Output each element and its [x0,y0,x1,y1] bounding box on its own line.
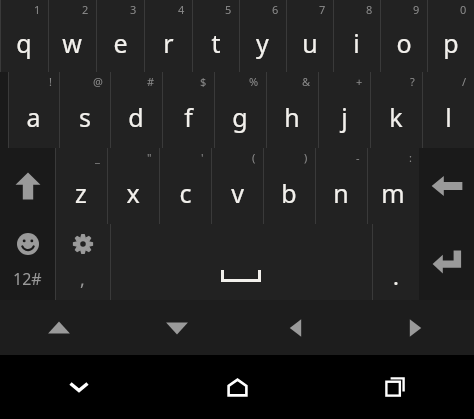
button[interactable]: 2 [48,0,96,72]
staticText: c [179,176,192,210]
staticText: h [284,100,300,134]
button[interactable]: Move left [236,300,355,355]
staticText: 12# [13,268,42,290]
button[interactable]: Move right [355,300,474,355]
button[interactable]: . [372,224,419,300]
button[interactable]: 6 [239,0,286,72]
staticText: r [163,26,174,60]
button[interactable]: ! [8,72,59,148]
button[interactable]: " [107,148,159,224]
button[interactable]: Space [110,224,372,300]
button[interactable]: Backspace [419,148,474,224]
staticText: - [356,150,360,165]
staticText: " [147,150,152,165]
button[interactable]: ? [370,72,422,148]
staticText: e [113,26,128,60]
button[interactable]: ( [211,148,263,224]
button[interactable]: 9 [380,0,427,72]
button[interactable]: # [110,72,162,148]
button[interactable]: Move down [118,300,236,355]
staticText: q [16,26,32,60]
button[interactable]: Home [158,355,316,419]
staticText: @ [93,74,103,89]
button[interactable]: % [214,72,266,148]
button[interactable]: & [266,72,318,148]
button[interactable]: 8 [333,0,380,72]
button[interactable]: : [367,148,419,224]
staticText: 3 [130,2,137,17]
button[interactable]: Recent apps [316,355,474,419]
button[interactable]: / [422,72,474,148]
staticText: 5 [225,2,232,17]
staticText: f [184,100,193,134]
staticText: t [211,26,221,60]
staticText: i [353,26,360,60]
staticText: z [75,176,87,210]
staticText: $ [200,74,207,89]
button[interactable]: - [315,148,367,224]
staticText: # [147,74,155,89]
staticText: & [302,74,311,89]
staticText: 4 [178,2,185,17]
staticText: l [445,100,452,134]
staticText: w [62,26,82,60]
staticText: 0 [460,2,467,17]
staticText: : [409,150,412,165]
button[interactable]: 5 [192,0,239,72]
staticText: 1 [34,2,41,17]
staticText: x [126,176,140,210]
staticText: 6 [272,2,279,17]
staticText: g [232,100,248,134]
staticText: a [26,100,41,134]
button[interactable]: 3 [96,0,144,72]
button[interactable]: 0 [427,0,474,72]
staticText: y [256,26,269,60]
button[interactable]: _ [55,148,107,224]
staticText: b [281,176,297,210]
button[interactable]: Enter [419,224,474,300]
button[interactable]: 4 [144,0,192,72]
button[interactable]: Symbols and emoji [0,224,55,300]
staticText: ) [304,150,308,165]
staticText: ' [201,150,204,165]
button[interactable]: 1 [0,0,48,72]
button[interactable]: Move up [0,300,118,355]
staticText: . [393,261,399,291]
staticText: + [356,74,363,89]
staticText: 7 [319,2,326,17]
staticText: ( [252,150,256,165]
staticText: ? [410,74,415,89]
staticText: d [128,100,144,134]
button[interactable]: ' [159,148,211,224]
staticText: j [341,100,348,134]
button[interactable]: Settings [55,224,110,300]
staticText: v [231,176,244,210]
staticText: , [80,267,85,292]
staticText: % [249,74,259,89]
button[interactable]: Shift [0,148,55,224]
button[interactable]: + [318,72,370,148]
staticText: _ [95,150,100,165]
staticText: 9 [413,2,420,17]
button[interactable]: $ [162,72,214,148]
staticText: 2 [82,2,89,17]
button[interactable]: Hide keyboard [0,355,158,419]
staticText: u [302,26,318,60]
staticText: 8 [366,2,373,17]
staticText: / [462,74,467,89]
staticText: s [79,100,91,134]
staticText: p [443,26,459,60]
staticText: o [396,26,412,60]
button[interactable]: @ [59,72,110,148]
staticText: m [381,176,405,210]
staticText: ! [49,74,52,89]
staticText: k [389,100,403,134]
staticText: n [333,176,349,210]
button[interactable]: 7 [286,0,333,72]
button[interactable]: ) [263,148,315,224]
